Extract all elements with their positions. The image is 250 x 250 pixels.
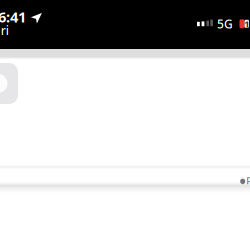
staticText: 1 [244,18,249,30]
staticText: ri [1,22,9,38]
staticText: 6:41 [0,7,26,26]
staticText: 5G [217,16,233,32]
staticText: Pay [246,174,250,187]
